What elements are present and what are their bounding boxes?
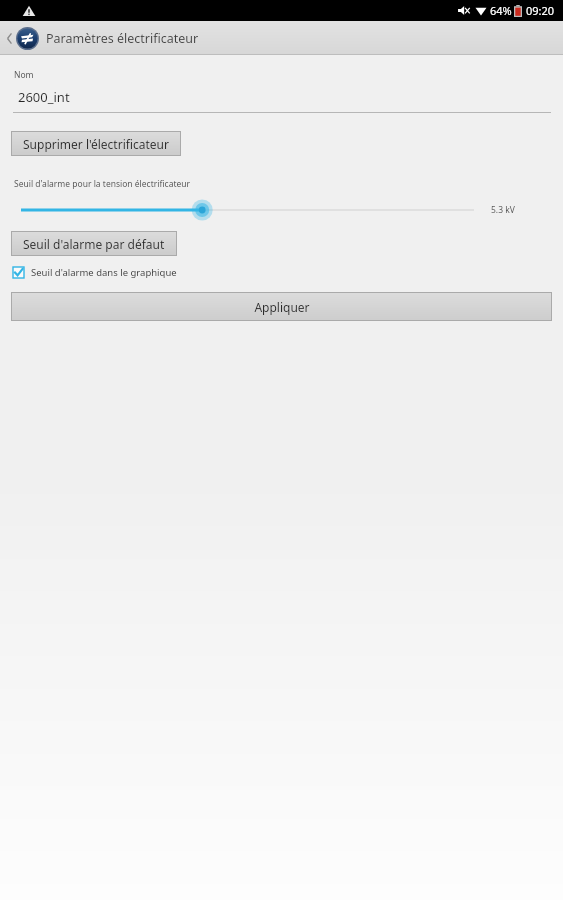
button[interactable]: Retour [0,24,209,53]
button[interactable]: Appliquer [11,292,552,321]
button[interactable]: Supprimer l'électrificateur [11,131,181,156]
button[interactable]: Seuil d'alarme [0,199,483,221]
staticText: 5.3 kV [491,204,563,216]
staticText: Nom [14,69,34,81]
staticText: Seuil d'alarme dans le graphique [31,266,177,279]
button[interactable]: Seuil d'alarme par défaut [11,231,177,256]
button[interactable]: 2600_int [0,88,563,113]
staticText: Seuil d'alarme par défaut [23,236,165,252]
staticText: 09:20 [526,3,555,18]
staticText: Seuil d'alarme pour la tension électrifi… [14,178,191,190]
staticText: 64% [490,3,512,18]
staticText: Paramètres électrificateur [46,30,199,47]
staticText: 2600_int [18,88,70,106]
button[interactable]: Seuil d'alarme dans le graphique [0,264,187,281]
staticText: Appliquer [254,299,310,315]
staticText: Supprimer l'électrificateur [23,136,169,152]
